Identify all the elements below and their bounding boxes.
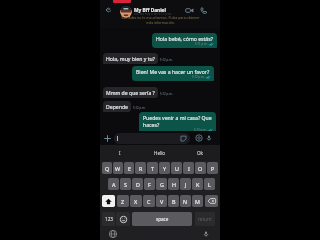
staticText: Hola bebé, cómo estás? bbox=[156, 35, 213, 42]
staticText: G bbox=[160, 181, 164, 188]
button[interactable]: E bbox=[124, 162, 134, 174]
staticText: M bbox=[195, 198, 200, 205]
staticText: O bbox=[198, 165, 203, 172]
button[interactable]: Voice message bbox=[205, 134, 213, 142]
button[interactable]: 123 bbox=[102, 212, 115, 226]
button[interactable]: Ok bbox=[180, 145, 220, 161]
button[interactable]: Back bbox=[103, 6, 111, 14]
staticText: D bbox=[136, 181, 140, 188]
button[interactable]: Hola, muy bien y tu? bbox=[103, 53, 158, 64]
button[interactable]: K bbox=[192, 178, 203, 190]
button[interactable]: space bbox=[132, 212, 192, 226]
button[interactable]: G bbox=[156, 178, 167, 190]
button[interactable]: Voice call bbox=[199, 6, 208, 15]
button[interactable]: Y bbox=[159, 162, 170, 174]
button[interactable]: F bbox=[144, 178, 155, 190]
staticText: R bbox=[139, 165, 143, 172]
button[interactable]: H bbox=[168, 178, 179, 190]
button[interactable]: Shift bbox=[102, 195, 115, 207]
button[interactable]: Puedes venir a mi casa? Que bbox=[139, 112, 216, 134]
staticText: C bbox=[147, 198, 151, 205]
staticText: U bbox=[175, 165, 179, 172]
button[interactable]: Attach bbox=[103, 134, 112, 143]
button[interactable]: Emoji bbox=[116, 212, 130, 226]
staticText: 5:12 p.m. bbox=[133, 106, 146, 110]
staticText: Puedes venir a mi casa? Que bbox=[143, 114, 212, 121]
staticText: Q bbox=[105, 165, 110, 172]
staticText: H bbox=[172, 181, 176, 188]
staticText: E bbox=[128, 165, 131, 172]
staticText: llamadas no lo escuchamos. Pulsa para ob… bbox=[121, 15, 200, 25]
staticText: 5:11 p.m. bbox=[195, 42, 208, 46]
button[interactable]: O bbox=[195, 162, 206, 174]
staticText: F bbox=[148, 181, 151, 188]
staticText: S bbox=[124, 181, 127, 188]
button[interactable]: D bbox=[132, 178, 143, 190]
staticText: space bbox=[156, 216, 169, 222]
button[interactable]: I bbox=[100, 145, 140, 161]
button[interactable]: Video call bbox=[185, 6, 194, 15]
button[interactable]: Stickers bbox=[114, 133, 190, 144]
button[interactable]: T bbox=[147, 162, 158, 174]
button[interactable]: return bbox=[195, 212, 215, 226]
staticText: 5:12 p.m. bbox=[160, 92, 173, 96]
button[interactable]: Camera bbox=[195, 134, 203, 142]
staticText: A bbox=[112, 181, 116, 188]
button[interactable]: Hello bbox=[140, 145, 180, 161]
staticText: X bbox=[134, 198, 138, 205]
staticText: 5 bbox=[108, 7, 111, 14]
staticText: Bien! Me vas a hacer un favor? bbox=[136, 68, 210, 75]
button[interactable]: Q bbox=[102, 162, 112, 174]
button[interactable]: Mmm de que sería ? bbox=[103, 87, 158, 98]
staticText: Z bbox=[121, 198, 125, 205]
button[interactable]: Stickers bbox=[180, 135, 187, 142]
button[interactable]: L bbox=[204, 178, 215, 190]
button[interactable]: J bbox=[180, 178, 191, 190]
staticText: return bbox=[198, 216, 212, 222]
staticText: J bbox=[185, 181, 187, 188]
staticText: Ok bbox=[197, 150, 204, 156]
staticText: T bbox=[151, 165, 154, 172]
staticText: 5:13 p.m. bbox=[194, 128, 207, 132]
button[interactable]: W bbox=[113, 162, 123, 174]
button[interactable]: N bbox=[180, 195, 191, 207]
staticText: K bbox=[196, 181, 200, 188]
staticText: L bbox=[208, 181, 211, 188]
button[interactable]: Depende bbox=[103, 101, 131, 112]
staticText: Y bbox=[163, 165, 167, 172]
staticText: 5:12 p.m. bbox=[192, 75, 205, 79]
button[interactable]: Dictate bbox=[202, 230, 210, 238]
button[interactable]: I bbox=[183, 162, 194, 174]
staticText: N bbox=[183, 198, 188, 205]
staticText: Hola, muy bien y tu? bbox=[106, 55, 155, 62]
button[interactable]: C bbox=[143, 195, 155, 207]
button[interactable]: U bbox=[171, 162, 182, 174]
staticText: V bbox=[160, 198, 164, 205]
button[interactable]: A bbox=[108, 178, 119, 190]
button[interactable]: Switch language bbox=[109, 230, 117, 238]
button[interactable]: P bbox=[207, 162, 218, 174]
staticText: haces? bbox=[143, 121, 160, 128]
button[interactable]: X bbox=[130, 195, 142, 207]
button[interactable]: Hola bebé, cómo estás? bbox=[152, 33, 217, 48]
button[interactable]: M bbox=[192, 195, 203, 207]
button[interactable]: S bbox=[120, 178, 131, 190]
button[interactable]: Z bbox=[117, 195, 129, 207]
staticText: Mmm de que sería ? bbox=[106, 89, 155, 96]
staticText: My Bff Daniel bbox=[134, 7, 166, 14]
staticText: I bbox=[188, 165, 190, 172]
staticText: últ. vez hoy a las 5:13 p.m. bbox=[134, 12, 172, 16]
button[interactable]: Bien! Me vas a hacer un favor? bbox=[132, 66, 214, 81]
staticText: B bbox=[172, 198, 176, 205]
button[interactable]: Backspace bbox=[205, 195, 218, 207]
staticText: P bbox=[211, 165, 215, 172]
button[interactable]: B bbox=[168, 195, 179, 207]
staticText: Hello bbox=[154, 150, 166, 156]
button[interactable]: V bbox=[156, 195, 167, 207]
staticText: W bbox=[115, 165, 121, 172]
staticText: 5:12 p.m. bbox=[160, 58, 173, 62]
button[interactable]: R bbox=[135, 162, 146, 174]
button[interactable]: Profile photo bbox=[120, 6, 132, 18]
staticText: I bbox=[119, 150, 121, 156]
staticText: 123 bbox=[105, 216, 113, 222]
